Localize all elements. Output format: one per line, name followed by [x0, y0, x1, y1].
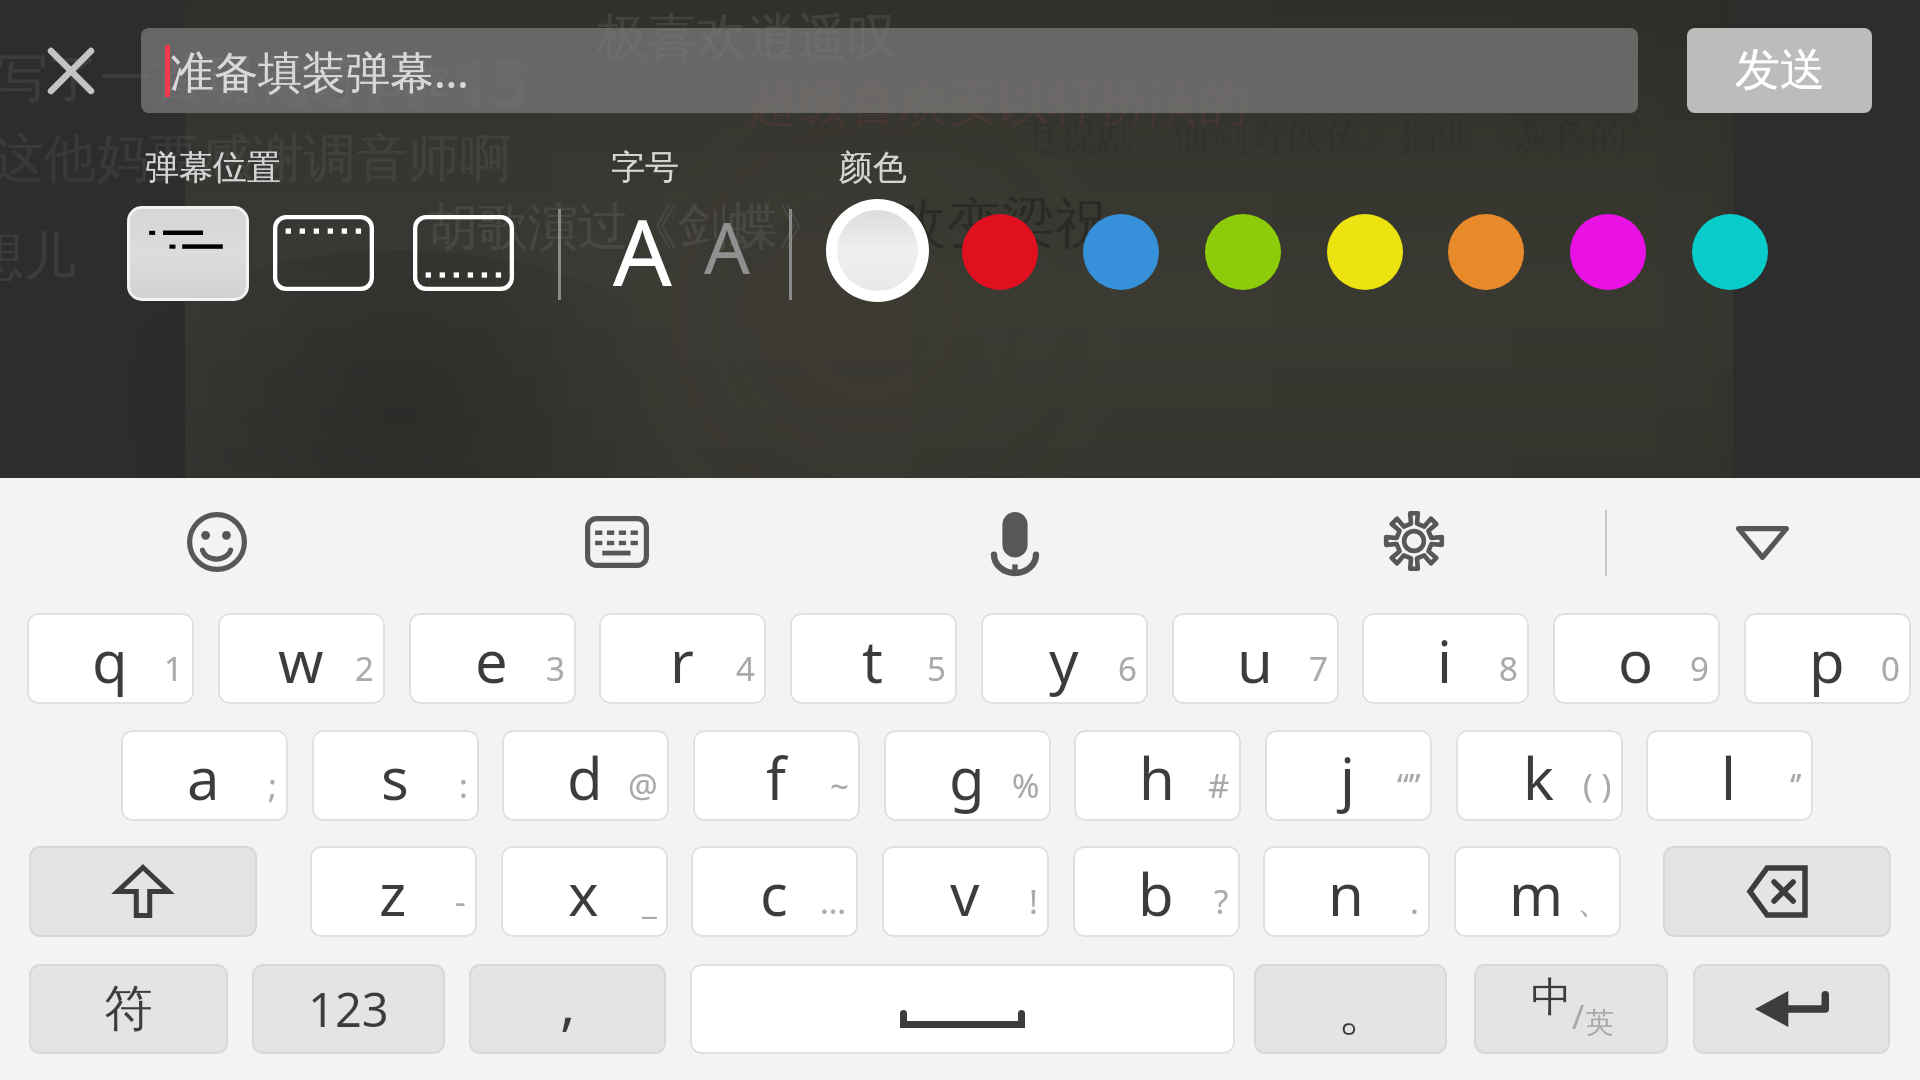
button[interactable]: Scrolling danmaku — [130, 209, 246, 298]
button[interactable]: Switch language — [1474, 964, 1668, 1054]
staticText: ‘’ — [1790, 763, 1802, 808]
button[interactable]: e — [409, 613, 576, 704]
staticText: 弹幕位置 — [145, 146, 281, 189]
staticText: 6 — [1118, 646, 1137, 691]
button[interactable]: Colour 2 — [1083, 214, 1159, 290]
staticText: 改变梁祝 — [893, 190, 1109, 258]
button[interactable]: g — [884, 730, 1051, 821]
staticText: / — [1572, 994, 1585, 1039]
staticText: - — [455, 879, 466, 924]
button[interactable]: v — [882, 846, 1049, 937]
staticText: ? — [1214, 879, 1229, 924]
staticText: 9 — [1690, 646, 1709, 691]
button[interactable]: p — [1744, 613, 1911, 704]
button[interactable]: 符 — [29, 964, 228, 1054]
button[interactable]: u — [1172, 613, 1339, 704]
button[interactable]: z — [310, 846, 477, 937]
staticText: m — [1509, 854, 1564, 933]
button[interactable]: w — [218, 613, 385, 704]
button[interactable]: d — [502, 730, 669, 821]
button[interactable]: l — [1646, 730, 1813, 821]
button[interactable]: Colour 4 — [1327, 214, 1403, 290]
button[interactable]: t — [790, 613, 957, 704]
staticText: t — [862, 621, 883, 700]
button[interactable]: x — [501, 846, 668, 937]
staticText: 发送 — [1735, 42, 1825, 99]
staticText: 0 — [1881, 646, 1900, 691]
button[interactable]: m — [1454, 846, 1621, 937]
button[interactable]: 123 — [252, 964, 445, 1054]
button[interactable]: Voice input — [994, 512, 1036, 573]
staticText: 。 — [1337, 975, 1393, 1046]
button[interactable]: i — [1362, 613, 1529, 704]
staticText: ; — [268, 763, 277, 808]
staticText: 颜色 — [839, 146, 907, 189]
staticText: 5 — [927, 646, 946, 691]
staticText: g — [949, 738, 985, 817]
button[interactable]: Close — [31, 31, 111, 111]
button[interactable]: , — [469, 964, 666, 1054]
staticText: 字号 — [611, 146, 679, 189]
staticText: i — [1437, 621, 1452, 700]
staticText: , — [560, 964, 576, 1041]
staticText: r — [670, 621, 694, 700]
button[interactable]: Large font size — [594, 186, 690, 292]
staticText: 、 — [1577, 881, 1610, 923]
button[interactable]: 准备填装弹幕… — [141, 28, 1638, 113]
staticText: 7 — [1309, 646, 1328, 691]
staticText: a — [187, 738, 220, 817]
button[interactable]: c — [691, 846, 858, 937]
button[interactable]: f — [693, 730, 860, 821]
button[interactable]: Colour 7 — [1692, 214, 1768, 290]
staticText: 超级喜欢安以轩扮演的 — [748, 72, 1248, 135]
button[interactable]: h — [1074, 730, 1241, 821]
staticText: d — [567, 738, 603, 817]
staticText: 准备填装弹幕… — [170, 41, 469, 101]
button[interactable]: Backspace — [1663, 846, 1891, 937]
button[interactable]: Top danmaku — [273, 215, 374, 291]
button[interactable]: s — [312, 730, 479, 821]
staticText: h — [1139, 738, 1175, 817]
button[interactable]: Colour 3 — [1205, 214, 1281, 290]
staticText: 中 — [1531, 972, 1572, 1024]
button[interactable]: Settings — [1384, 511, 1444, 571]
button[interactable]: Emoji — [187, 512, 247, 572]
button[interactable]: 。 — [1254, 964, 1447, 1054]
staticText: z — [379, 854, 407, 933]
button[interactable]: Colour 1 — [962, 214, 1038, 290]
staticText: s — [381, 738, 409, 817]
button[interactable]: r — [599, 613, 766, 704]
button[interactable]: y — [981, 613, 1148, 704]
button[interactable]: Enter — [1693, 964, 1890, 1054]
staticText: n — [1328, 854, 1364, 933]
staticText: p — [1809, 621, 1845, 700]
button[interactable]: Colour 6 — [1570, 214, 1646, 290]
staticText: # — [1208, 763, 1230, 808]
staticText: ! — [1029, 879, 1038, 924]
staticText: ~ — [830, 763, 849, 808]
button[interactable]: a — [121, 730, 288, 821]
staticText: @ — [628, 763, 658, 808]
staticText: 8 — [1499, 646, 1518, 691]
button[interactable]: Keyboard layout — [585, 516, 649, 568]
button[interactable]: Small font size — [686, 192, 768, 292]
button[interactable]: White colour — [837, 210, 918, 291]
staticText: v — [950, 854, 980, 933]
staticText: . — [1410, 879, 1419, 924]
staticText: % — [1012, 763, 1040, 808]
button[interactable]: o — [1553, 613, 1720, 704]
button[interactable]: Space — [690, 964, 1235, 1054]
button[interactable]: q — [27, 613, 194, 704]
button[interactable]: j — [1265, 730, 1432, 821]
staticText: f — [766, 738, 786, 817]
button[interactable]: Bottom danmaku — [413, 215, 514, 291]
button[interactable]: b — [1073, 846, 1240, 937]
button[interactable]: 发送 — [1687, 28, 1872, 113]
button[interactable]: n — [1263, 846, 1430, 937]
staticText: b — [1138, 854, 1174, 933]
button[interactable]: Colour 5 — [1448, 214, 1524, 290]
button[interactable]: Hide keyboard — [1736, 526, 1789, 560]
staticText: 英 — [1586, 1005, 1614, 1040]
button[interactable]: Shift — [29, 846, 257, 937]
button[interactable]: k — [1456, 730, 1623, 821]
